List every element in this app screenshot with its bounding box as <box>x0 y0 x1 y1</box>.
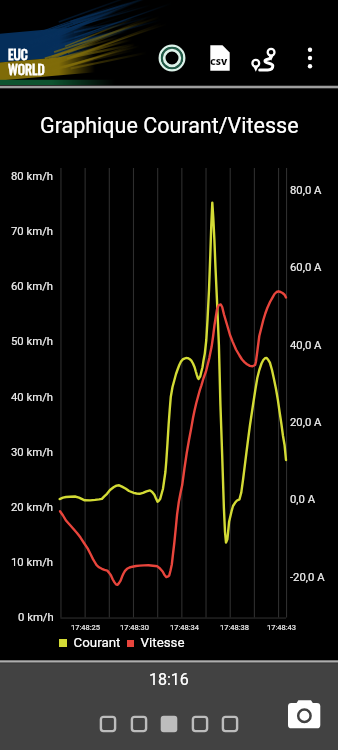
staticText: EUC <box>8 44 28 64</box>
staticText: CSV <box>210 55 228 67</box>
staticText: 18:16 <box>149 670 189 688</box>
staticText: Vitesse <box>134 635 185 651</box>
button[interactable]: Export CSV <box>199 37 241 79</box>
staticText: WORLD <box>8 59 45 79</box>
button[interactable]: Page 3 <box>156 711 182 737</box>
staticText: 50 km/h <box>11 335 54 348</box>
staticText: 20 km/h <box>11 501 54 514</box>
button[interactable]: Page 1 <box>95 711 121 737</box>
button[interactable]: Page 2 <box>126 711 152 737</box>
staticText: 20,0 A <box>290 416 322 429</box>
staticText: 0,0 A <box>290 493 316 506</box>
staticText: 17:48:43 <box>267 623 296 632</box>
button[interactable]: Start recording <box>151 37 193 79</box>
staticText: 80,0 A <box>290 184 322 197</box>
staticText: 17:48:30 <box>120 623 149 632</box>
button[interactable]: Page 4 <box>187 711 213 737</box>
staticText: 17:48:38 <box>220 623 249 632</box>
button[interactable]: Show route <box>249 37 291 79</box>
staticText: 60 km/h <box>11 280 54 293</box>
button[interactable]: More options <box>289 37 331 79</box>
staticText: 0 km/h <box>18 611 54 624</box>
staticText: 40,0 A <box>290 339 322 352</box>
staticText: 10 km/h <box>11 556 54 569</box>
staticText: 70 km/h <box>11 225 54 238</box>
staticText: 30 km/h <box>11 446 54 459</box>
button[interactable]: Take screenshot <box>282 694 326 738</box>
staticText: 80 km/h <box>11 170 54 183</box>
button[interactable]: Page 5 <box>217 711 243 737</box>
staticText: -20,0 A <box>290 571 325 584</box>
staticText: 60,0 A <box>290 261 322 274</box>
staticText: Courant <box>67 635 127 651</box>
staticText: 17:48:34 <box>170 623 199 632</box>
staticText: 40 km/h <box>11 391 54 404</box>
staticText: Graphique Courant/Vitesse <box>40 113 299 138</box>
staticText: 17:48:25 <box>71 623 100 632</box>
